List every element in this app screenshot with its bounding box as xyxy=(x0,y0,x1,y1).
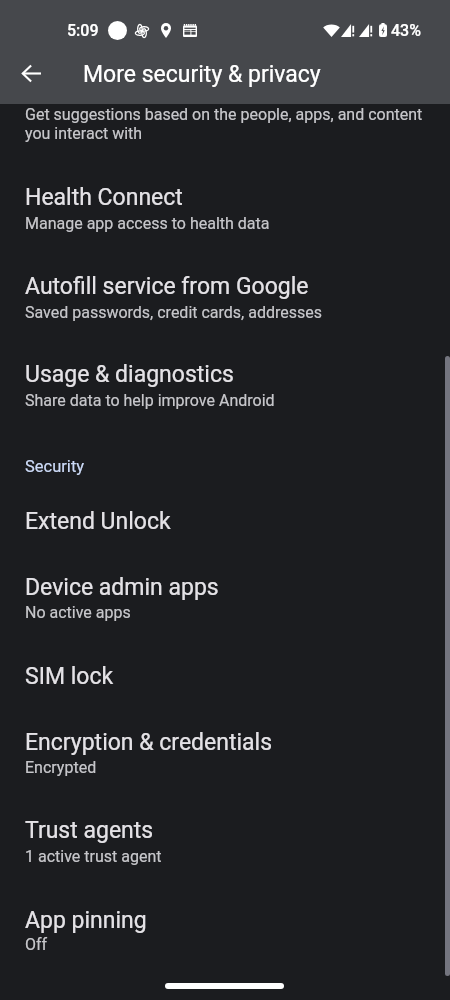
button[interactable]: App pinning xyxy=(0,885,450,974)
staticText: Device admin apps xyxy=(25,573,219,601)
staticText: Autofill service from Google xyxy=(25,272,309,300)
button[interactable]: Extend Unlock xyxy=(0,487,450,553)
staticText: Usage & diagnostics xyxy=(25,360,234,388)
staticText: Extend Unlock xyxy=(25,507,171,535)
button[interactable]: Back xyxy=(10,52,52,94)
staticText: No active apps xyxy=(25,603,131,622)
button[interactable]: Usage & diagnostics xyxy=(0,336,450,424)
button[interactable]: Get suggestions based on the people, app… xyxy=(25,105,427,143)
staticText: Manage app access to health data xyxy=(25,214,270,233)
button[interactable]: Trust agents xyxy=(0,797,450,885)
button[interactable]: Device admin apps xyxy=(0,553,450,642)
staticText: Saved passwords, credit cards, addresses xyxy=(25,303,322,322)
button[interactable]: Health Connect xyxy=(0,158,450,247)
staticText: 43% xyxy=(391,21,421,40)
button[interactable]: Encryption & credentials xyxy=(0,708,450,797)
staticText: Encrypted xyxy=(25,758,97,777)
staticText: 1 active trust agent xyxy=(25,847,162,866)
button[interactable]: Security xyxy=(25,457,85,476)
staticText: Share data to help improve Android xyxy=(25,391,275,410)
button[interactable]: Autofill service from Google xyxy=(0,247,450,336)
button[interactable]: SIM lock xyxy=(0,642,450,708)
staticText: More security & privacy xyxy=(83,61,321,88)
staticText: Off xyxy=(25,935,48,954)
staticText: SIM lock xyxy=(25,662,114,690)
staticText: Encryption & credentials xyxy=(25,728,273,756)
staticText: Get suggestions based on the people, app… xyxy=(25,105,427,143)
staticText: Security xyxy=(25,457,85,476)
staticText: 5:09 xyxy=(67,21,99,40)
staticText: App pinning xyxy=(25,906,147,934)
staticText: Health Connect xyxy=(25,183,183,211)
staticText: Trust agents xyxy=(25,816,154,844)
